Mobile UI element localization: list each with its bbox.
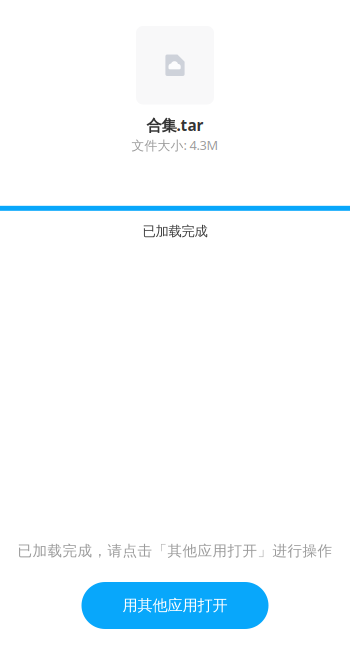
staticText: 用其他应用打开 [122, 596, 227, 615]
button[interactable]: 用其他应用打开 [81, 582, 268, 629]
staticText: 文件大小: 4.3M [131, 136, 218, 154]
staticText: 已加载完成 [142, 223, 207, 240]
staticText: 合集.tar [146, 114, 203, 135]
staticText: 已加载完成，请点击「其他应用打开」进行操作 [17, 542, 332, 560]
